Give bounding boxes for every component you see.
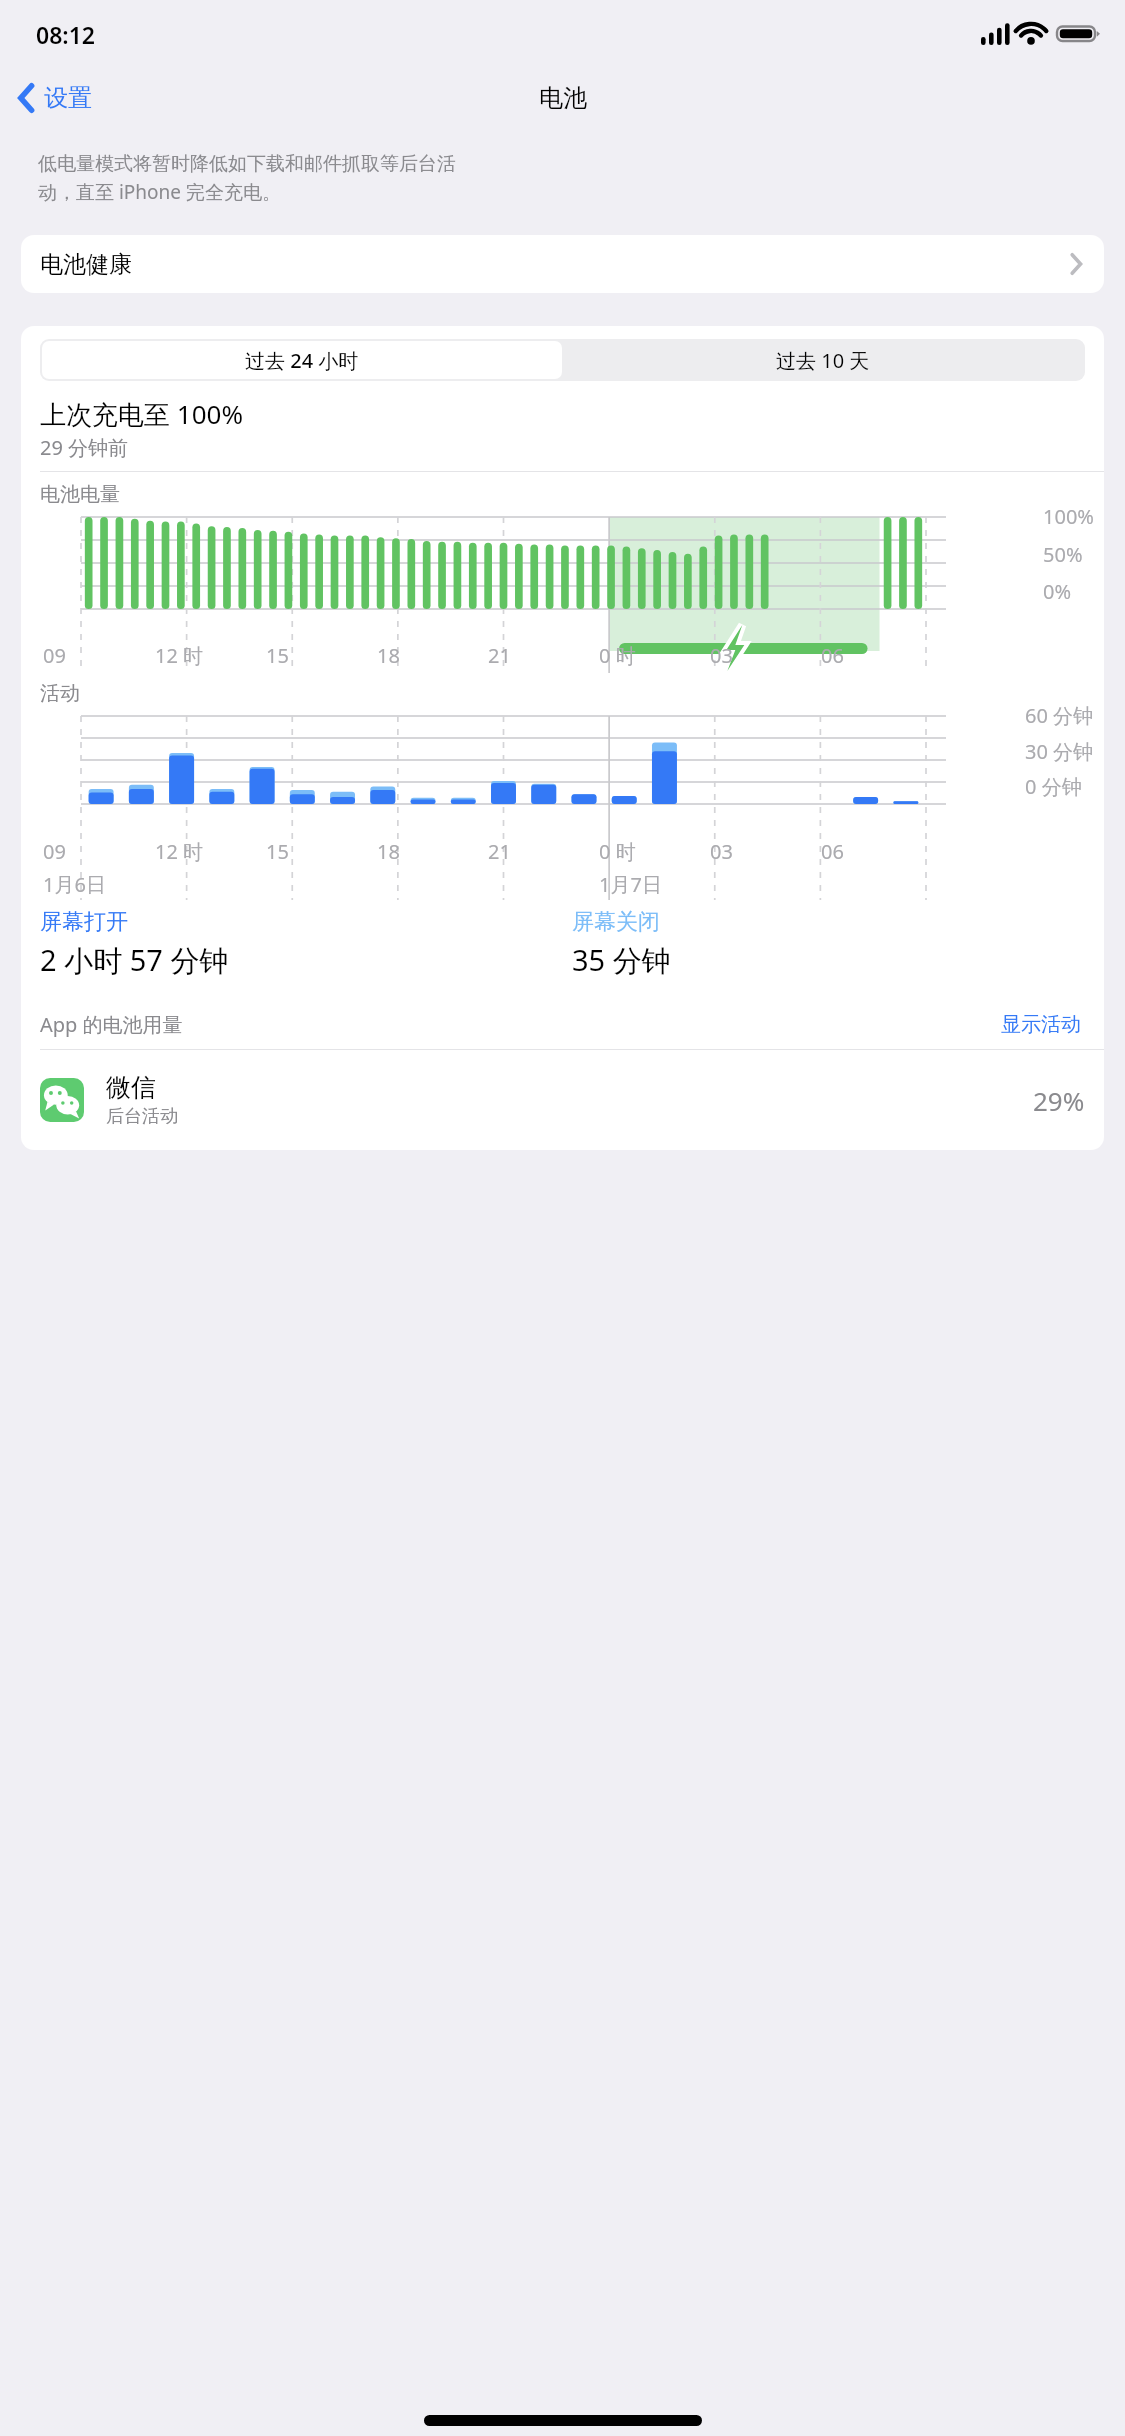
other: 电池健康 <box>1070 253 1082 275</box>
staticText: 屏幕打开 <box>40 908 128 936</box>
staticText: 0 分钟 <box>1025 773 1082 800</box>
staticText: 29 分钟前 <box>40 434 129 461</box>
staticText: 活动 <box>40 681 80 706</box>
staticText: 21 <box>488 838 511 865</box>
staticText: 35 分钟 <box>572 940 671 980</box>
staticText: 06 <box>821 838 844 865</box>
staticText: 显示活动 <box>1001 1012 1081 1037</box>
button[interactable]: 过去 24 小时 <box>42 341 562 379</box>
button[interactable]: 电池健康 <box>21 235 1104 293</box>
button[interactable]: 显示活动 <box>997 1008 1085 1041</box>
staticText: 后台活动 <box>106 1105 178 1128</box>
button[interactable]: 过去 10 天 <box>562 341 1083 379</box>
staticText: 过去 24 小时 <box>245 347 359 374</box>
staticText: 15 <box>266 642 289 669</box>
button[interactable]: 微信 <box>21 1050 1104 1150</box>
staticText: 03 <box>710 642 733 669</box>
staticText: 18 <box>377 642 400 669</box>
staticText: 0 时 <box>599 838 636 865</box>
staticText: 电池 <box>539 83 587 113</box>
staticText: 08:12 <box>36 19 95 50</box>
staticText: 1月6日 <box>43 871 106 898</box>
staticText: 12 时 <box>155 838 204 865</box>
staticText: 29% <box>1033 1083 1085 1118</box>
staticText: 电池电量 <box>40 482 120 507</box>
staticText: 微信 <box>106 1072 156 1103</box>
staticText: 15 <box>266 838 289 865</box>
staticText: 1月7日 <box>599 871 662 898</box>
staticText: App 的电池用量 <box>40 1011 183 1038</box>
staticText: 0 时 <box>599 642 636 669</box>
staticText: 06 <box>821 642 844 669</box>
staticText: 电池健康 <box>40 250 132 279</box>
staticText: 100% <box>1043 503 1094 530</box>
staticText: 12 时 <box>155 642 204 669</box>
staticText: 上次充电至 100% <box>40 396 243 432</box>
button[interactable]: 设置 <box>0 73 106 123</box>
staticText: 60 分钟 <box>1025 702 1094 729</box>
staticText: 21 <box>488 642 511 669</box>
staticText: 03 <box>710 838 733 865</box>
staticText: 18 <box>377 838 400 865</box>
staticText: 过去 10 天 <box>776 347 870 374</box>
staticText: 30 分钟 <box>1025 738 1094 765</box>
staticText: 50% <box>1043 541 1083 568</box>
staticText: 2 小时 57 分钟 <box>40 940 229 980</box>
staticText: 0% <box>1043 578 1072 605</box>
staticText: 设置 <box>44 83 92 113</box>
staticText: 09 <box>43 838 66 865</box>
staticText: 低电量模式将暂时降低如下载和邮件抓取等后台活 动，直至 iPhone 完全充电。 <box>38 152 456 205</box>
staticText: 屏幕关闭 <box>572 908 660 936</box>
staticText: 09 <box>43 642 66 669</box>
